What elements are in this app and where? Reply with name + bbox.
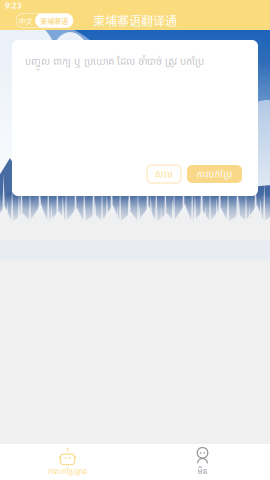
- staticText: 中文: [18, 15, 32, 26]
- button[interactable]: ការបកប្រែ: [187, 165, 242, 183]
- staticText: 9:23: [5, 0, 22, 11]
- staticText: 柬埔寨语翻译通: [93, 12, 177, 29]
- button[interactable]: មិន: [135, 444, 270, 480]
- staticText: ការបកប្រែឆ្លាត: [47, 466, 87, 476]
- staticText: 柬埔寨语: [40, 15, 68, 26]
- staticText: បញ្ចូល ពាក្យ ឬ ប្រយោគ ដែល ចាំបាច់ ត្រូវ …: [25, 54, 204, 68]
- staticText: មិន: [197, 466, 207, 476]
- button[interactable]: សមេ: [147, 165, 181, 183]
- button[interactable]: 中文: [16, 13, 73, 27]
- button[interactable]: ការបកប្រែឆ្លាត: [0, 444, 135, 480]
- staticText: ការបកប្រែ: [196, 168, 232, 180]
- staticText: សមេ: [155, 168, 173, 180]
